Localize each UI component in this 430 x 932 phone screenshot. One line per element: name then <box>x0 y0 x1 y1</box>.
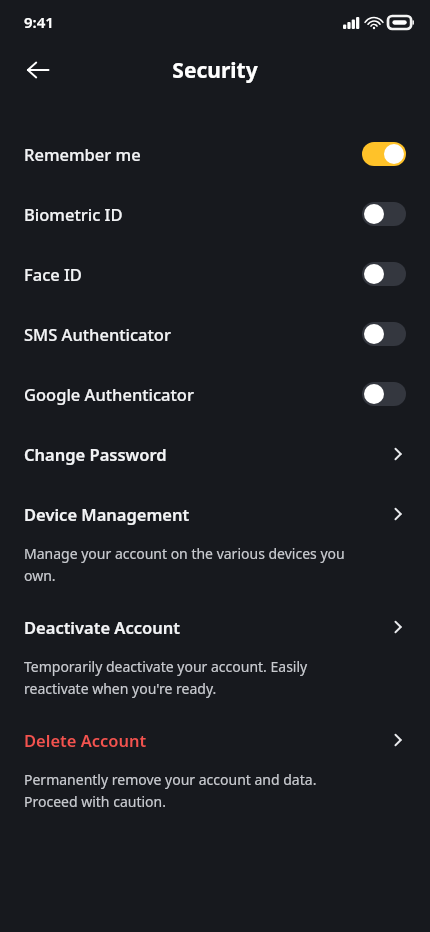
button[interactable]: SMS Authenticator <box>0 304 430 364</box>
staticText: Biometric ID <box>24 203 362 225</box>
staticText: Security <box>172 56 258 85</box>
staticText: Temporarily deactivate your account. Eas… <box>24 657 346 698</box>
staticText: Permanently remove your account and data… <box>24 770 346 811</box>
staticText: Delete Account <box>24 729 390 751</box>
button[interactable]: Device Management <box>0 484 430 597</box>
staticText: Remember me <box>24 143 362 165</box>
staticText: Google Authenticator <box>24 383 362 405</box>
button[interactable]: Delete Account <box>0 710 430 823</box>
staticText: 9:41 <box>24 12 54 32</box>
staticText: Face ID <box>24 263 362 285</box>
button[interactable]: Google Authenticator <box>0 364 430 424</box>
button[interactable]: Change Password <box>0 424 430 484</box>
staticText: SMS Authenticator <box>24 323 362 345</box>
button[interactable]: Back <box>14 46 62 94</box>
button[interactable]: Face ID <box>0 244 430 304</box>
button[interactable]: Deactivate Account <box>0 597 430 710</box>
button[interactable]: Biometric ID <box>0 184 430 244</box>
button[interactable]: Remember me <box>0 124 430 184</box>
staticText: Deactivate Account <box>24 616 390 638</box>
staticText: Manage your account on the various devic… <box>24 544 346 585</box>
staticText: Device Management <box>24 503 390 525</box>
staticText: Change Password <box>24 443 390 465</box>
